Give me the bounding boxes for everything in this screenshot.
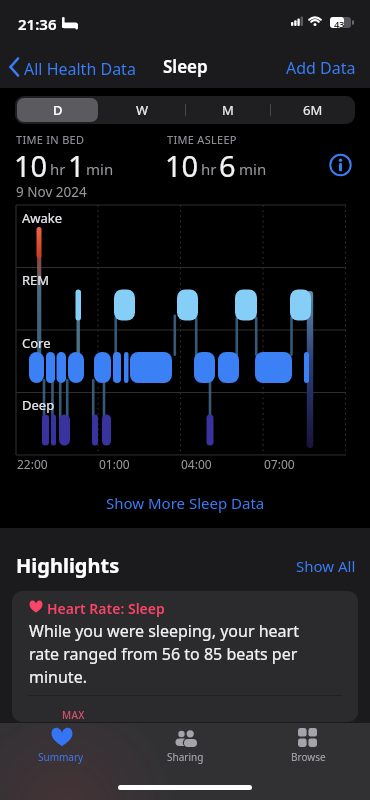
staticText: 07:00: [264, 456, 295, 472]
staticText: 01:00: [99, 456, 130, 472]
button[interactable]: W: [100, 96, 185, 124]
staticText: Awake: [22, 209, 63, 227]
staticText: TIME IN BED: [16, 132, 85, 147]
staticText: Show All: [296, 556, 356, 576]
button[interactable]: [17, 98, 98, 122]
button[interactable]: D: [15, 96, 100, 124]
staticText: W: [136, 101, 149, 119]
staticText: D: [53, 101, 63, 119]
button[interactable]: All Health Data: [4, 50, 154, 84]
button[interactable]: Summary: [26, 724, 96, 782]
button[interactable]: Heart Rate: Sleep: [12, 591, 358, 722]
staticText: REM: [22, 271, 50, 289]
button[interactable]: Show More Sleep Data: [0, 490, 370, 516]
staticText: 6: [219, 146, 236, 185]
staticText: All Health Data: [24, 58, 136, 80]
staticText: hr: [50, 159, 66, 179]
staticText: 6M: [303, 101, 323, 119]
staticText: Highlights: [16, 552, 120, 579]
staticText: 10: [165, 146, 199, 185]
staticText: While you were sleeping, your heart rate…: [29, 620, 349, 688]
staticText: Add Data: [286, 57, 356, 79]
button[interactable]: Show All: [270, 556, 356, 578]
button[interactable]: 6M: [270, 96, 355, 124]
staticText: MAX: [62, 708, 85, 722]
staticText: 43: [334, 18, 344, 31]
staticText: Core: [22, 334, 51, 352]
staticText: 1: [68, 146, 85, 185]
staticText: Deep: [22, 396, 55, 414]
staticText: 21:36: [18, 14, 57, 34]
button[interactable]: Browse: [273, 724, 343, 782]
staticText: Sleep: [163, 55, 208, 78]
staticText: TIME ASLEEP: [167, 132, 237, 147]
staticText: hr: [201, 159, 217, 179]
staticText: Browse: [291, 750, 326, 764]
staticText: Sharing: [167, 750, 204, 764]
staticText: 10: [14, 146, 48, 185]
staticText: M: [222, 101, 234, 119]
staticText: 04:00: [181, 456, 212, 472]
button[interactable]: Sharing: [150, 724, 220, 782]
staticText: 22:00: [17, 456, 48, 472]
staticText: 9 Nov 2024: [16, 183, 87, 201]
staticText: Summary: [38, 750, 84, 764]
button[interactable]: Add Data: [284, 50, 356, 84]
staticText: min: [239, 159, 267, 179]
staticText: Heart Rate: Sleep: [47, 599, 165, 618]
button[interactable]: [327, 151, 355, 179]
staticText: Show More Sleep Data: [106, 493, 265, 513]
button[interactable]: M: [185, 96, 270, 124]
staticText: min: [86, 159, 114, 179]
